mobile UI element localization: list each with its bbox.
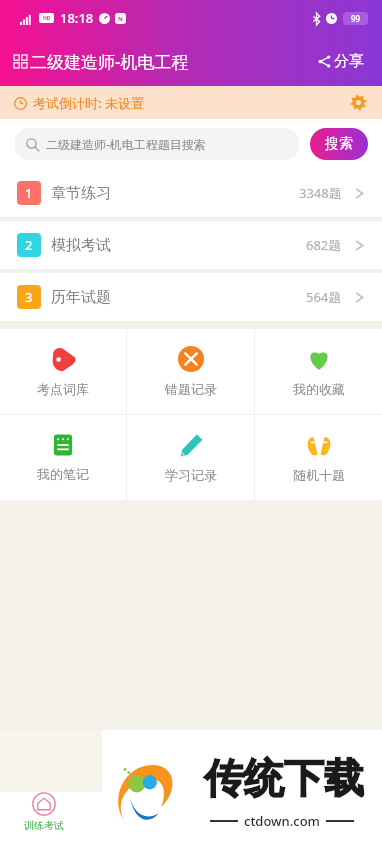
- button[interactable]: 1: [0, 169, 382, 217]
- button[interactable]: 错题记录: [127, 329, 254, 414]
- button[interactable]: 考点词库: [0, 329, 126, 414]
- staticText: 考试倒计时: 未设置: [33, 94, 144, 112]
- staticText: 考点词库: [37, 381, 89, 397]
- staticText: 搜索: [325, 135, 353, 153]
- staticText: 3348题: [299, 184, 342, 202]
- staticText: 3: [25, 288, 33, 306]
- staticText: 模拟考试: [51, 236, 111, 255]
- staticText: 传统下载: [204, 753, 364, 803]
- staticText: 训练考试: [24, 819, 64, 832]
- staticText: ctdown.com: [244, 812, 320, 830]
- button[interactable]: 考试倒计时: 未设置: [0, 86, 382, 119]
- staticText: 错题记录: [165, 381, 217, 397]
- button[interactable]: Settings: [347, 91, 370, 114]
- button[interactable]: 训练考试: [24, 792, 64, 832]
- staticText: 章节练习: [51, 184, 111, 203]
- staticText: 分享: [334, 52, 364, 71]
- staticText: 2: [25, 236, 33, 254]
- staticText: 我的收藏: [293, 381, 345, 397]
- button[interactable]: 随机十题: [255, 415, 382, 500]
- button[interactable]: 搜索: [310, 128, 368, 160]
- staticText: 99: [351, 13, 361, 24]
- button[interactable]: 我的笔记: [0, 415, 126, 500]
- button[interactable]: 二级建造师-机电工程题目搜索: [14, 128, 300, 160]
- staticText: 学习记录: [165, 467, 217, 483]
- staticText: 564题: [306, 288, 342, 306]
- staticText: 18:18: [60, 9, 94, 27]
- button[interactable]: 3: [0, 273, 382, 321]
- staticText: 历年试题: [51, 288, 111, 307]
- button[interactable]: 分享: [314, 48, 368, 75]
- button[interactable]: 学习记录: [127, 415, 254, 500]
- staticText: 1: [25, 184, 33, 202]
- staticText: N: [118, 15, 123, 23]
- staticText: 随机十题: [293, 467, 345, 483]
- button[interactable]: 2: [0, 221, 382, 269]
- staticText: 二级建造师-机电工程: [30, 50, 189, 73]
- button[interactable]: 我的收藏: [255, 329, 382, 414]
- staticText: 二级建造师-机电工程题目搜索: [46, 136, 206, 152]
- staticText: HD: [43, 15, 51, 22]
- staticText: 682题: [306, 236, 342, 254]
- staticText: 我的笔记: [37, 466, 89, 482]
